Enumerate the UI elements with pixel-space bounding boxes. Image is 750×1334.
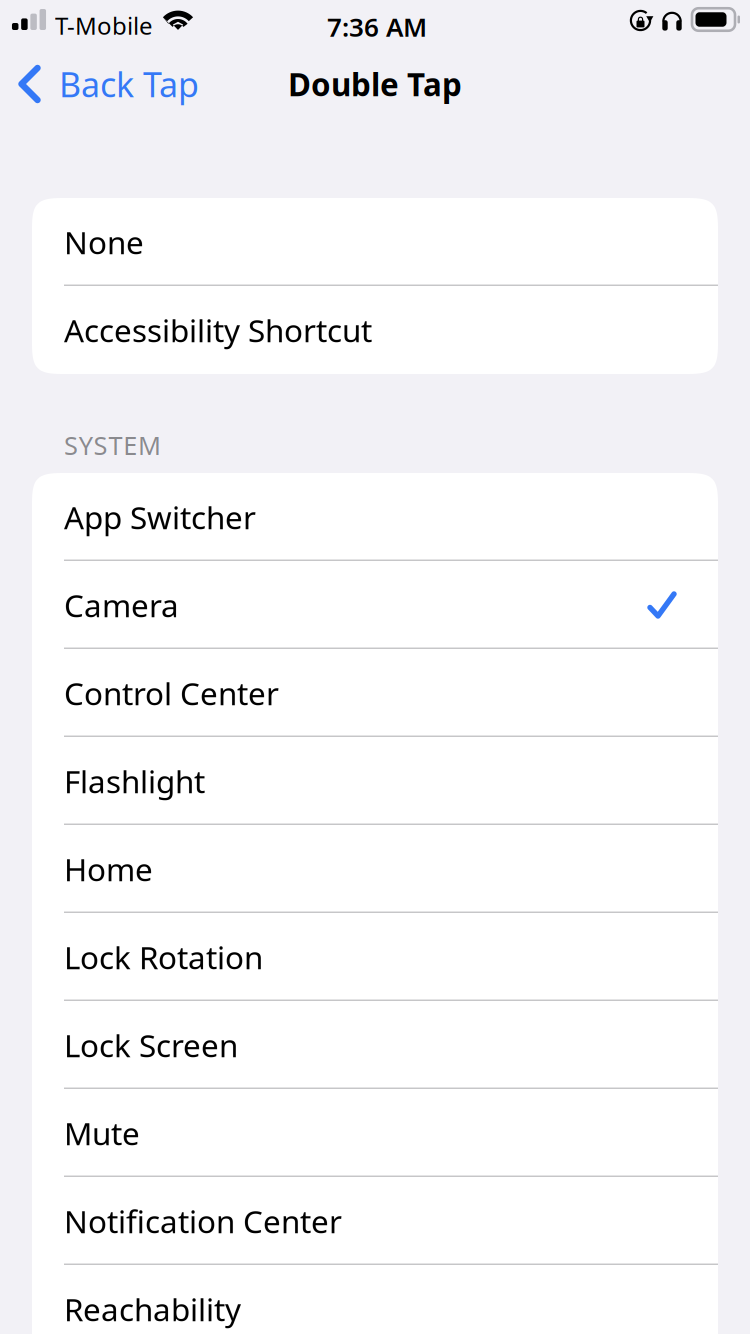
staticText: T-Mobile	[55, 9, 153, 42]
staticText: Double Tap	[288, 63, 462, 105]
staticText: Notification Center	[64, 1200, 342, 1242]
staticText: Lock Rotation	[64, 936, 263, 978]
staticText: Mute	[64, 1112, 140, 1154]
staticText: Reachability	[64, 1288, 241, 1330]
staticText: SYSTEM	[64, 428, 161, 462]
staticText: Accessibility Shortcut	[64, 309, 372, 351]
staticText: Back Tap	[59, 61, 199, 107]
staticText: Control Center	[64, 672, 279, 714]
button[interactable]: Reachability	[32, 1265, 718, 1334]
button[interactable]: App Switcher	[32, 473, 718, 561]
button[interactable]: Mute	[32, 1089, 718, 1177]
button[interactable]: Lock Screen	[32, 1001, 718, 1089]
staticText: Flashlight	[64, 760, 205, 802]
button[interactable]: Control Center	[32, 649, 718, 737]
button[interactable]: Flashlight	[32, 737, 718, 825]
button[interactable]: Accessibility Shortcut	[32, 286, 718, 374]
button[interactable]: Home	[32, 825, 718, 913]
staticText: Camera	[64, 584, 179, 626]
button[interactable]: Lock Rotation	[32, 913, 718, 1001]
staticText: App Switcher	[64, 496, 256, 538]
button[interactable]: Back Tap	[0, 52, 215, 116]
button[interactable]: None	[32, 198, 718, 286]
staticText: None	[64, 221, 144, 263]
staticText: 7:36 AM	[327, 9, 427, 44]
staticText: Lock Screen	[64, 1024, 238, 1066]
staticText: Home	[64, 848, 153, 890]
button[interactable]: Camera	[32, 561, 718, 649]
button[interactable]: Notification Center	[32, 1177, 718, 1265]
